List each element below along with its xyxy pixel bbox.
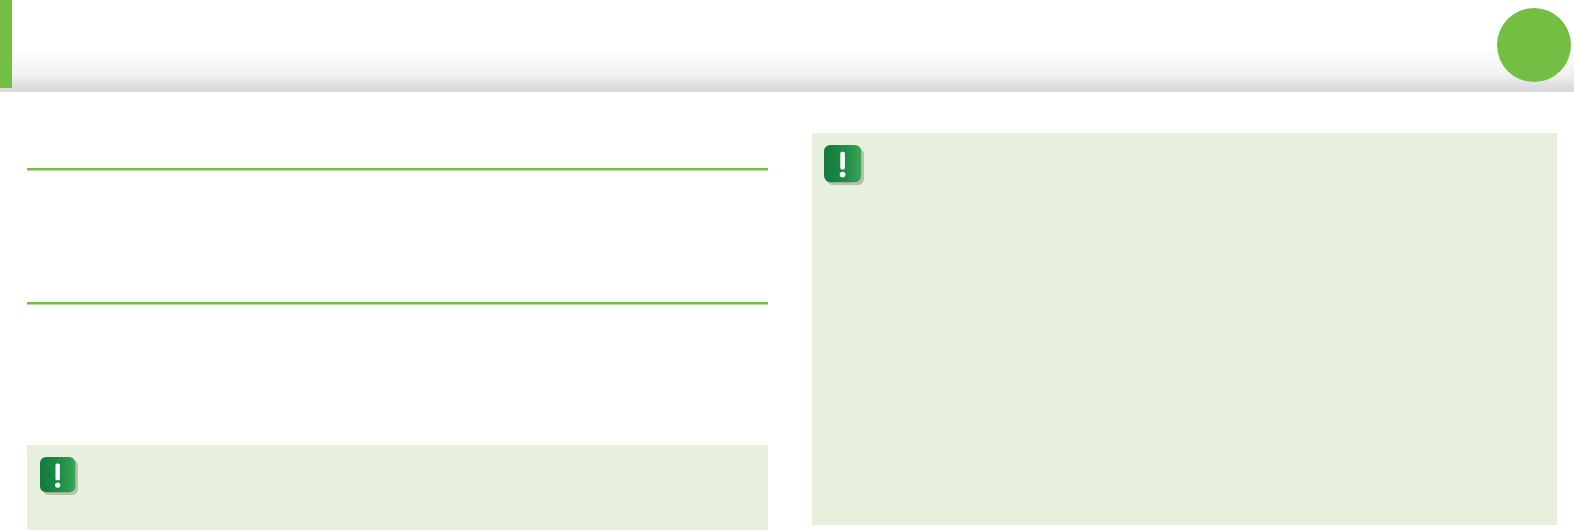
button[interactable]: Important note — [40, 457, 78, 495]
button[interactable]: Important note — [824, 145, 864, 185]
button[interactable]: Important note — [812, 133, 1557, 525]
button[interactable]: Important note — [27, 445, 768, 530]
